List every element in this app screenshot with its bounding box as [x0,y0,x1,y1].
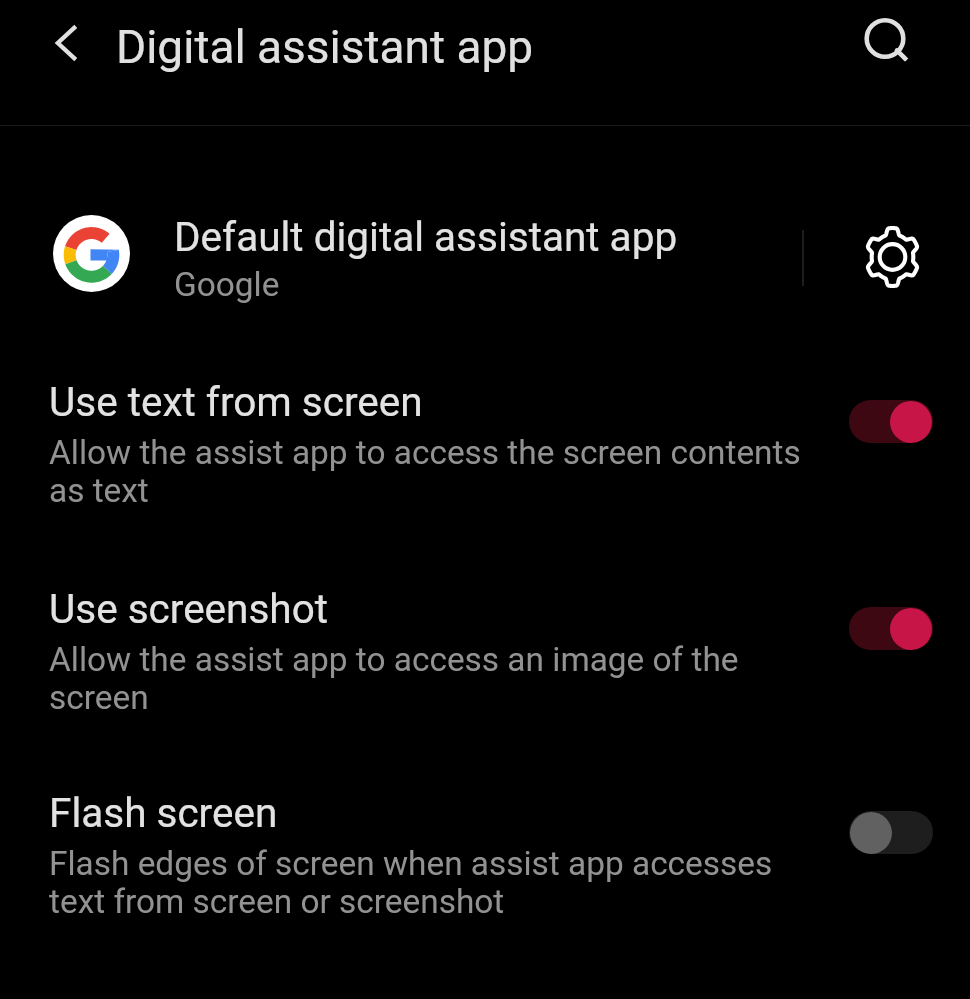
staticText: Flash edges of screen when assist app ac… [49,844,815,921]
button[interactable]: Enabled [849,607,933,650]
staticText: Use screenshot [49,585,329,632]
button[interactable]: Default digital assistant app [0,208,970,308]
staticText: Use text from screen [49,378,423,425]
button[interactable]: Disabled [849,811,933,854]
staticText: Flash screen [49,789,278,836]
staticText: Default digital assistant app [174,213,678,260]
button[interactable]: Flash screen [0,789,970,949]
button[interactable]: Search [854,7,916,69]
staticText: Google [174,265,280,304]
staticText: Digital assistant app [116,20,534,74]
staticText: Allow the assist app to access an image … [49,640,815,717]
staticText: Allow the assist app to access the scree… [49,433,815,510]
button[interactable]: Use text from screen [0,378,970,538]
button[interactable]: Enabled [849,400,933,443]
button[interactable]: Use screenshot [0,585,970,745]
button[interactable]: Back [36,12,98,74]
button[interactable]: Settings [846,211,938,303]
